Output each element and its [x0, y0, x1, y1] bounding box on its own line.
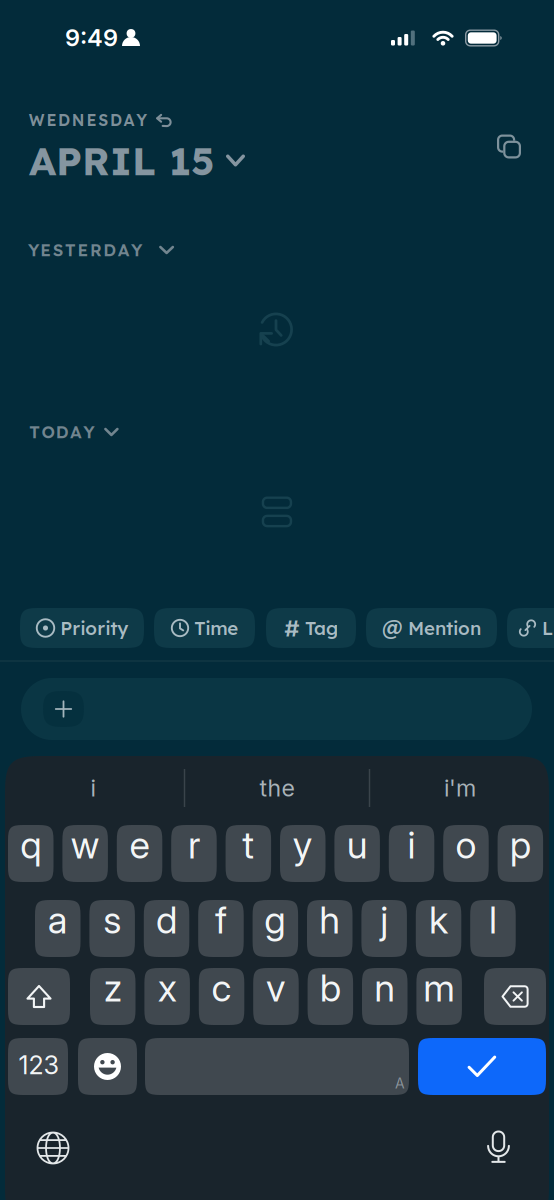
staticText: w	[71, 822, 100, 868]
staticText: D	[103, 239, 116, 260]
staticText: s	[103, 897, 121, 943]
staticText: q	[20, 822, 41, 868]
staticText: b	[320, 965, 341, 1011]
staticText: Y	[83, 421, 94, 442]
staticText: @	[382, 615, 403, 641]
staticText: Tag	[305, 616, 338, 640]
button[interactable]: Space	[145, 1038, 409, 1095]
button[interactable]: m	[416, 968, 462, 1025]
button[interactable]: v	[253, 968, 299, 1025]
button[interactable]: Copy	[497, 134, 521, 158]
button[interactable]: #	[266, 608, 356, 648]
staticText: a	[48, 897, 68, 943]
button[interactable]: Undo	[155, 115, 171, 127]
button[interactable]: q	[8, 825, 53, 882]
staticText: T	[65, 239, 76, 260]
staticText: f	[215, 897, 227, 943]
button[interactable]: APRIL 15	[29, 136, 245, 185]
button[interactable]: 123	[8, 1038, 68, 1095]
button[interactable]: i	[9, 766, 177, 810]
staticText: Link	[542, 616, 554, 640]
button[interactable]: u	[334, 825, 380, 882]
staticText: p	[510, 822, 531, 868]
staticText: D	[56, 421, 69, 442]
button[interactable]: Dictate	[486, 1130, 511, 1163]
staticText: 123	[18, 1050, 59, 1080]
staticText: u	[347, 822, 368, 868]
button[interactable]: w	[62, 825, 108, 882]
button[interactable]: o	[443, 825, 489, 882]
button[interactable]: l	[470, 900, 516, 957]
staticText: W	[29, 110, 45, 130]
staticText: z	[104, 965, 122, 1011]
button[interactable]: Y	[28, 239, 174, 260]
staticText: Y	[136, 110, 147, 130]
staticText: d	[156, 897, 177, 943]
button[interactable]: d	[144, 900, 189, 957]
button[interactable]: T	[29, 421, 119, 442]
staticText: Y	[131, 239, 142, 260]
button[interactable]: p	[498, 825, 543, 882]
staticText: j	[380, 897, 388, 943]
staticText: A	[124, 110, 135, 130]
button[interactable]: b	[308, 968, 353, 1025]
staticText: y	[293, 822, 313, 868]
button[interactable]: c	[199, 968, 244, 1025]
button[interactable]: f	[198, 900, 244, 957]
button[interactable]: g	[253, 900, 298, 957]
staticText: S	[53, 239, 64, 260]
button[interactable]: Time	[154, 608, 255, 648]
button[interactable]: Add entry	[21, 678, 532, 740]
button[interactable]: Next keyboard	[36, 1131, 69, 1164]
staticText: APRIL 15	[29, 136, 214, 185]
button[interactable]: @	[366, 608, 497, 648]
button[interactable]: e	[117, 825, 162, 882]
staticText: D	[110, 110, 122, 130]
staticText: E	[46, 110, 56, 130]
button[interactable]: s	[89, 900, 135, 957]
staticText: N	[72, 110, 85, 130]
staticText: Priority	[60, 616, 128, 640]
button[interactable]: Shift	[8, 968, 70, 1025]
button[interactable]: the	[193, 766, 361, 810]
button[interactable]: h	[307, 900, 352, 957]
staticText: h	[319, 897, 340, 943]
staticText: v	[266, 965, 286, 1011]
staticText: A	[70, 421, 82, 442]
staticText: 9:49	[65, 23, 118, 52]
staticText: g	[264, 897, 286, 943]
staticText: i	[90, 774, 95, 802]
button[interactable]: Delete	[484, 968, 546, 1025]
button[interactable]: y	[280, 825, 325, 882]
button[interactable]: x	[144, 968, 190, 1025]
button[interactable]: i'm	[376, 766, 544, 810]
button[interactable]: r	[171, 825, 217, 882]
button[interactable]: k	[416, 900, 461, 957]
staticText: i'm	[444, 774, 476, 802]
staticText: x	[158, 965, 177, 1011]
button[interactable]: a	[35, 900, 80, 957]
staticText: Mention	[408, 616, 481, 640]
button[interactable]: t	[226, 825, 271, 882]
button[interactable]: Emoji	[78, 1038, 137, 1095]
button[interactable]: n	[362, 968, 407, 1025]
staticText: Time	[194, 616, 238, 640]
staticText: t	[242, 822, 254, 868]
staticText: S	[98, 110, 108, 130]
button[interactable]: Priority	[20, 608, 144, 648]
staticText: n	[374, 965, 395, 1011]
button[interactable]: z	[90, 968, 135, 1025]
staticText: A	[118, 239, 130, 260]
button[interactable]: Return	[418, 1038, 546, 1095]
staticText: E	[40, 239, 51, 260]
staticText: l	[489, 897, 497, 943]
staticText: D	[58, 110, 70, 130]
button[interactable]: j	[361, 900, 407, 957]
staticText: Y	[28, 239, 39, 260]
staticText: #	[284, 614, 300, 642]
staticText: i	[408, 822, 416, 868]
staticText: m	[423, 965, 455, 1011]
staticText: E	[86, 110, 96, 130]
button[interactable]: i	[389, 825, 434, 882]
button[interactable]: Link	[507, 608, 554, 648]
